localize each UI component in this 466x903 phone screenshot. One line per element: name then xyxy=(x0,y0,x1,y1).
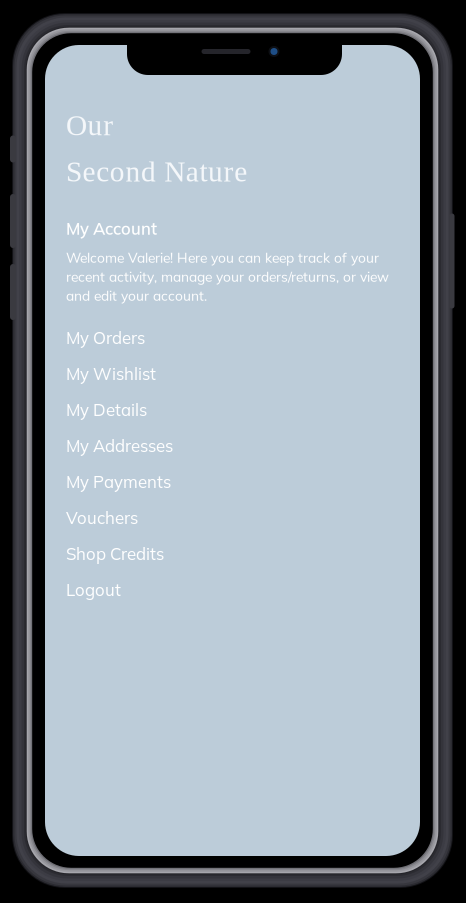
button[interactable]: My Addresses xyxy=(66,428,399,464)
staticText: My Account xyxy=(66,218,157,239)
staticText: Shop Credits xyxy=(66,543,164,564)
staticText: Second Nature xyxy=(66,155,247,188)
button[interactable]: Logout xyxy=(66,572,399,608)
button[interactable]: My Orders xyxy=(66,320,399,356)
staticText: My Wishlist xyxy=(66,363,156,384)
staticText: Our xyxy=(66,109,113,141)
staticText: Logout xyxy=(66,579,121,600)
staticText: My Orders xyxy=(66,327,145,348)
button[interactable]: My Wishlist xyxy=(66,356,399,392)
staticText: Welcome Valerie! Here you can keep track… xyxy=(66,249,389,304)
button[interactable]: Shop Credits xyxy=(66,536,399,572)
staticText: My Payments xyxy=(66,471,171,492)
button[interactable]: My Details xyxy=(66,392,399,428)
staticText: My Addresses xyxy=(66,435,173,456)
staticText: Vouchers xyxy=(66,507,138,528)
staticText: My Details xyxy=(66,399,147,420)
button[interactable]: Vouchers xyxy=(66,500,399,536)
button[interactable]: My Payments xyxy=(66,464,399,500)
